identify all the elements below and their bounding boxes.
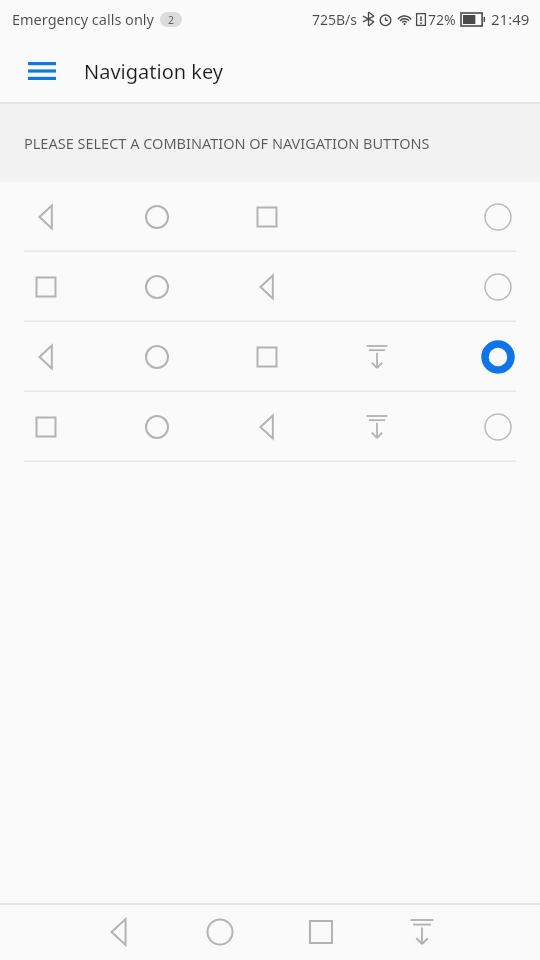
staticText: 725B/s [312,10,358,29]
staticText: 21:49 [491,9,530,29]
button[interactable]: Notifications [371,904,472,960]
staticText: PLEASE SELECT A COMBINATION OF NAVIGATIO… [24,133,430,153]
button[interactable] [0,182,540,252]
button[interactable] [0,322,540,392]
button[interactable] [0,252,540,322]
button[interactable]: Recent apps [270,904,371,960]
button[interactable] [0,392,540,462]
button[interactable]: Back [68,904,169,960]
button[interactable]: Home [169,904,270,960]
staticText: Navigation key [84,58,224,85]
staticText: Emergency calls only [12,9,154,29]
staticText: 72% [428,10,456,29]
staticText: 2 [168,13,175,27]
button[interactable]: Open navigation menu [18,47,66,95]
